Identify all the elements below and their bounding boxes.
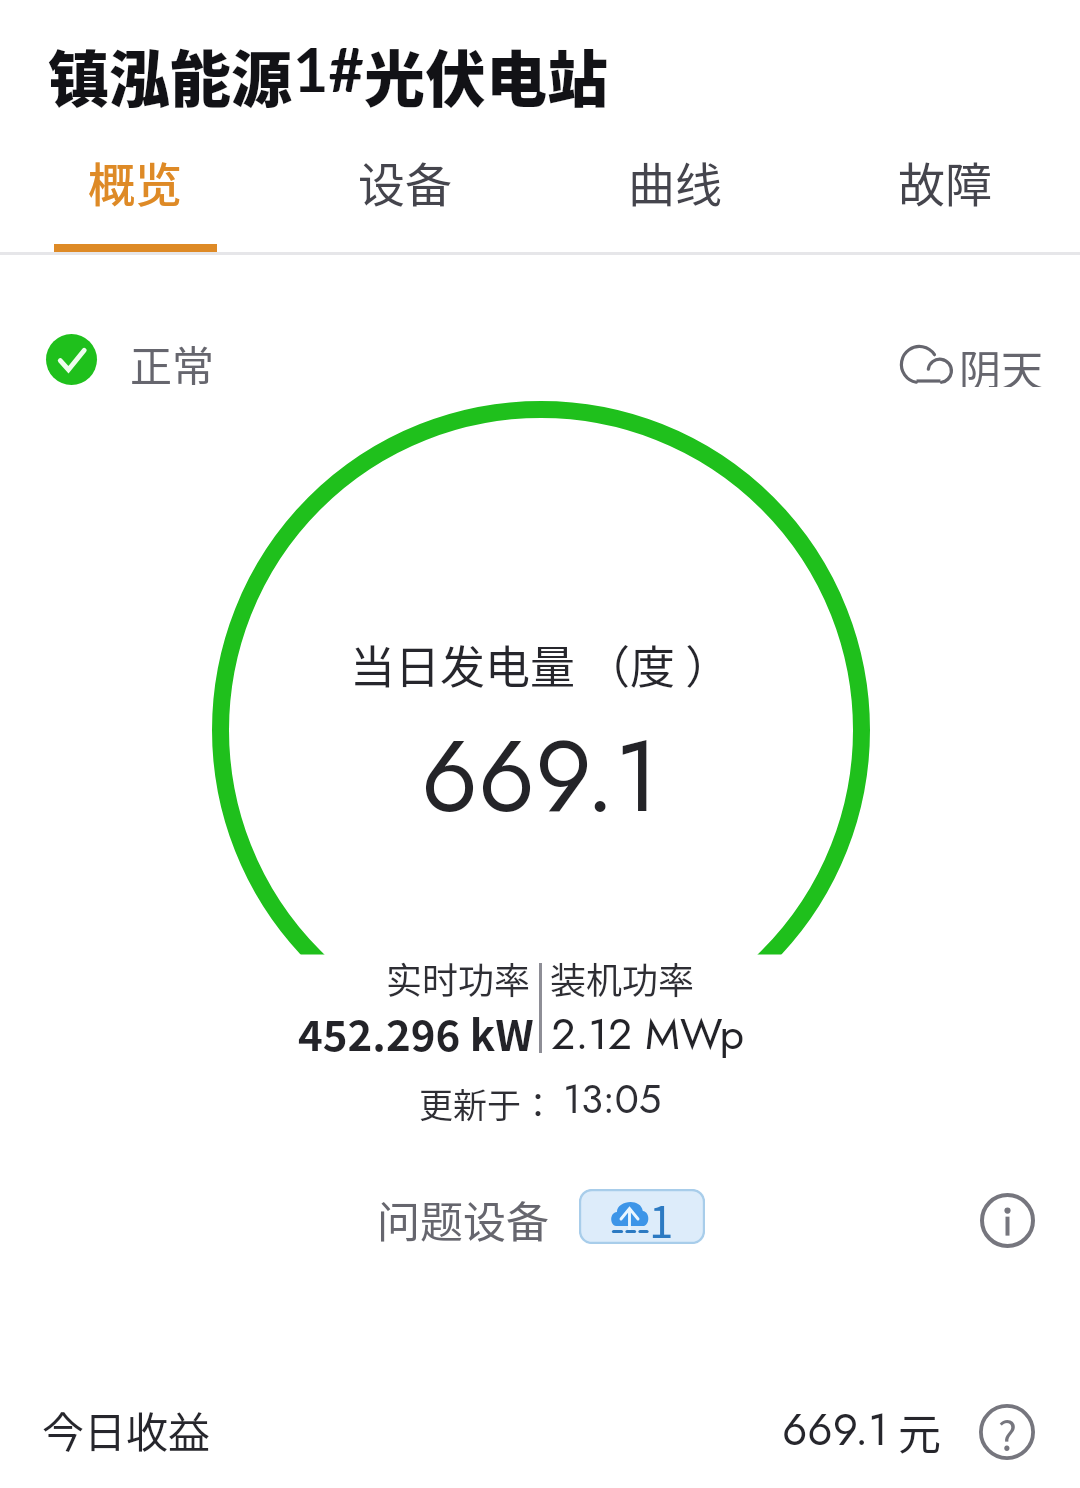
- button[interactable]: 1 offline device: [579, 1189, 705, 1244]
- staticText: 452.296 kW: [298, 1002, 534, 1063]
- button[interactable]: Information: [980, 1193, 1035, 1248]
- staticText: 669.1: [421, 705, 660, 848]
- staticText: 13:05: [563, 1070, 662, 1128]
- staticText: 1: [649, 1189, 674, 1242]
- staticText: 设备: [358, 147, 452, 215]
- button[interactable]: 问题设备: [377, 1188, 705, 1244]
- staticText: 装机功率: [550, 952, 695, 1004]
- staticText: 更新于：: [419, 1079, 555, 1128]
- button[interactable]: 正常: [46, 333, 215, 385]
- staticText: 问题设备: [377, 1188, 549, 1244]
- button[interactable]: 今日收益: [42, 1382, 1037, 1477]
- button[interactable]: 设备: [270, 128, 540, 252]
- staticText: 故障: [898, 147, 992, 215]
- button[interactable]: 阴天: [901, 337, 1044, 387]
- staticText: 曲线: [628, 147, 722, 215]
- staticText: 镇泓能源: [48, 31, 293, 119]
- staticText: 元: [898, 1400, 941, 1462]
- staticText: 光伏电站: [364, 31, 609, 119]
- button[interactable]: 概览: [0, 128, 270, 252]
- staticText: 实时功率: [386, 952, 531, 1004]
- staticText: 669.1: [782, 1398, 888, 1462]
- staticText: 2.12 MWp: [551, 1003, 744, 1065]
- staticText: 当日发电量 （度 ）: [350, 632, 731, 697]
- button[interactable]: Help: [979, 1404, 1035, 1460]
- staticText: 阴天: [959, 337, 1044, 387]
- button[interactable]: 故障: [810, 128, 1080, 252]
- staticText: 1#: [293, 32, 364, 105]
- staticText: 今日收益: [42, 1399, 211, 1460]
- staticText: ?: [998, 1404, 1017, 1460]
- staticText: 概览: [88, 147, 182, 215]
- button[interactable]: 曲线: [540, 128, 810, 252]
- staticText: 正常: [130, 333, 215, 385]
